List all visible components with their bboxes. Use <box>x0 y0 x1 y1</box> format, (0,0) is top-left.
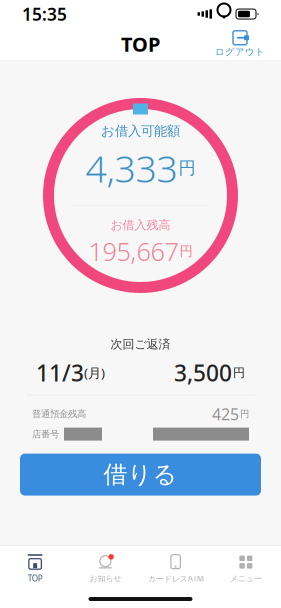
staticText: メニュー <box>230 574 262 583</box>
button[interactable]: お知らせ <box>70 549 140 587</box>
staticText: 円 <box>233 365 245 380</box>
staticText: ログアウト <box>215 46 265 58</box>
staticText: お借入残高 <box>110 218 170 232</box>
button[interactable]: TOP <box>0 549 70 587</box>
staticText: 3,500 <box>174 358 232 388</box>
staticText: 11/3 <box>36 358 84 388</box>
staticText: お知らせ <box>89 574 121 583</box>
staticText: (月) <box>84 364 105 381</box>
staticText: カードレスATM <box>148 573 204 584</box>
staticText: TOP <box>28 573 43 584</box>
button[interactable]: メニュー <box>211 549 281 587</box>
staticText: 円 <box>179 243 192 259</box>
staticText: 円 <box>178 157 195 179</box>
staticText: 4,333 <box>85 143 177 193</box>
button[interactable]: カードレスATM <box>140 549 211 587</box>
staticText: 195,667 <box>88 234 178 268</box>
staticText: TOP <box>121 31 160 57</box>
staticText: 円 <box>240 408 249 420</box>
staticText: 店番号 <box>32 428 59 440</box>
staticText: 15:35 <box>22 2 67 25</box>
button[interactable]: 借りる <box>20 454 261 496</box>
button[interactable]: ログアウト <box>211 28 269 60</box>
staticText: 借りる <box>103 460 177 489</box>
staticText: 普通預金残高 <box>32 408 86 420</box>
staticText: 425 <box>212 403 239 424</box>
staticText: お借入可能額 <box>101 123 180 139</box>
staticText: 次回ご返済 <box>110 337 170 352</box>
